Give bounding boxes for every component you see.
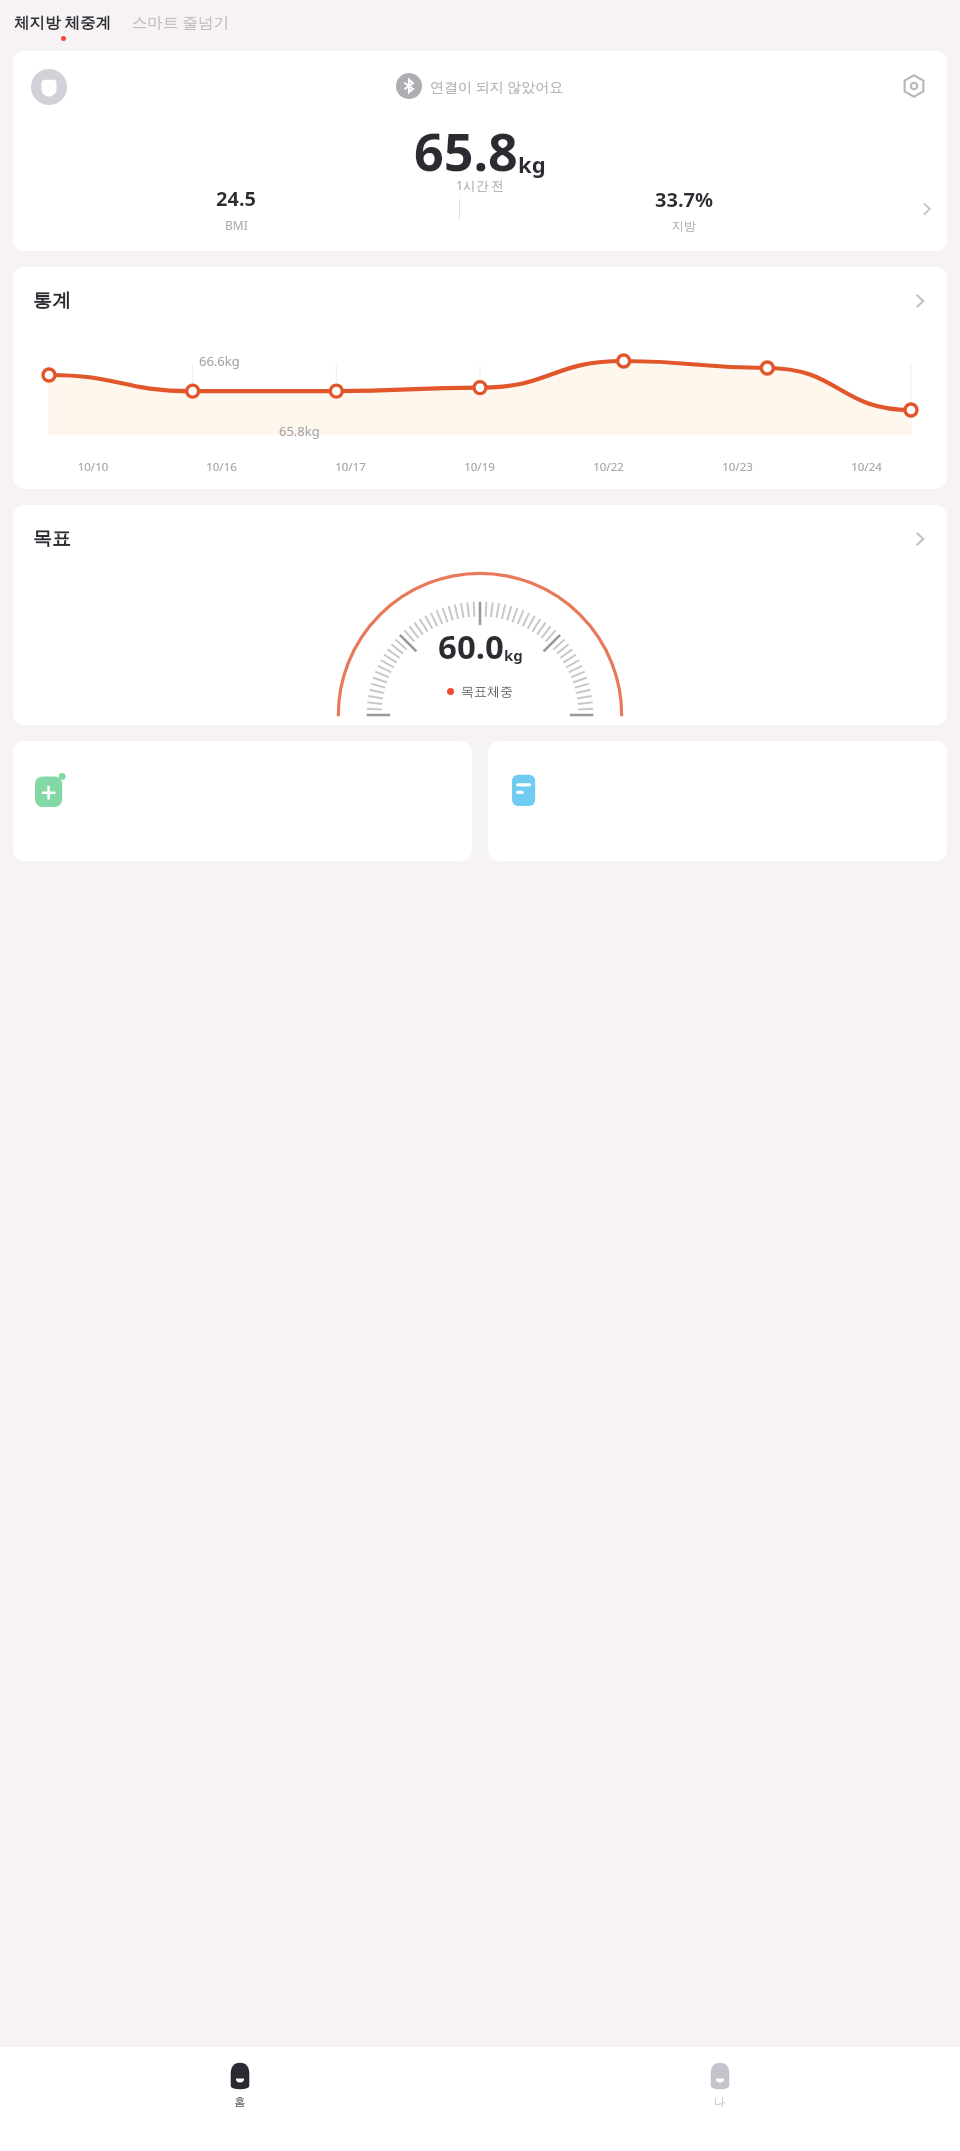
staticText: 24.5: [216, 185, 256, 212]
button[interactable]: 목표: [13, 505, 947, 725]
staticText: BMI: [225, 217, 248, 233]
staticText: 10/16: [157, 459, 286, 475]
staticText: kg: [504, 645, 523, 665]
staticText: 홈: [234, 2095, 246, 2109]
staticText: 10/17: [286, 459, 415, 475]
staticText: 목표: [33, 527, 71, 551]
staticText: 65.8kg: [279, 422, 320, 440]
staticText: 33.7%: [655, 186, 713, 213]
button[interactable]: [488, 741, 947, 861]
button[interactable]: 체지방 체중계: [10, 11, 116, 41]
staticText: 65.8: [414, 115, 518, 186]
button[interactable]: 홈: [0, 2047, 480, 2151]
button[interactable]: 나: [480, 2047, 960, 2151]
button[interactable]: 스마트 줄넘기: [128, 9, 234, 43]
button[interactable]: 통계: [13, 267, 947, 489]
button[interactable]: [13, 741, 472, 861]
button[interactable]: Profile: [31, 69, 67, 105]
staticText: 10/22: [544, 459, 673, 475]
staticText: 나: [714, 2095, 726, 2109]
button[interactable]: Settings: [899, 71, 929, 101]
staticText: kg: [518, 149, 546, 179]
staticText: 10/19: [415, 459, 544, 475]
staticText: 1시간 전: [456, 177, 504, 194]
staticText: 통계: [33, 289, 71, 313]
staticText: 지방: [672, 218, 696, 233]
staticText: 10/24: [802, 459, 931, 475]
button[interactable]: Profile: [13, 51, 947, 251]
staticText: 목표체중: [461, 683, 513, 699]
staticText: 60.0: [438, 624, 504, 669]
staticText: 연결이 되지 않았어요: [430, 77, 564, 96]
staticText: 66.6kg: [199, 352, 240, 370]
staticText: 10/10: [29, 459, 157, 475]
staticText: 체지방 체중계: [14, 11, 112, 32]
staticText: 스마트 줄넘기: [132, 11, 230, 32]
staticText: 10/23: [673, 459, 802, 475]
